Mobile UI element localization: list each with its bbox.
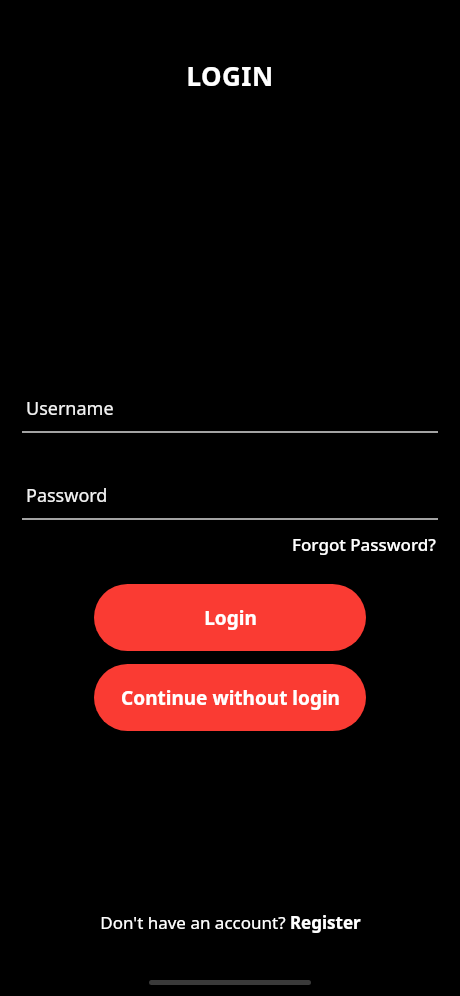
button[interactable]: Login bbox=[94, 584, 366, 651]
button[interactable]: Don't have an account? Register bbox=[94, 907, 367, 938]
button[interactable]: Password bbox=[0, 483, 460, 520]
staticText: Don't have an account? Register bbox=[100, 911, 361, 934]
staticText: Forgot Password? bbox=[292, 533, 436, 556]
button[interactable]: Username bbox=[0, 396, 460, 433]
staticText: Continue without login bbox=[121, 685, 340, 711]
button[interactable]: Forgot Password? bbox=[290, 529, 438, 560]
staticText: Login bbox=[204, 605, 257, 631]
staticText: LOGIN bbox=[186, 58, 274, 93]
staticText: Username bbox=[26, 396, 114, 421]
button[interactable]: Continue without login bbox=[94, 664, 366, 731]
staticText: Password bbox=[26, 483, 108, 508]
